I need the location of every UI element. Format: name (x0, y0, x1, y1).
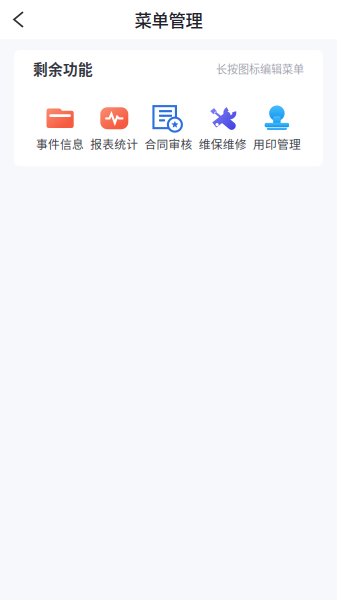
staticText: 长按图标编辑菜单 (216, 61, 304, 77)
staticText: 事件信息 (36, 135, 84, 152)
staticText: 菜单管理 (134, 7, 202, 32)
button[interactable]: 报表统计 (87, 105, 141, 152)
button[interactable]: 用印管理 (250, 105, 304, 152)
button[interactable]: 维保维修 (196, 105, 250, 152)
staticText: 维保维修 (199, 135, 247, 152)
button[interactable]: 合同审核 (141, 105, 196, 152)
staticText: 剩余功能 (33, 58, 93, 79)
staticText: 合同审核 (144, 135, 192, 152)
button[interactable]: 事件信息 (33, 105, 87, 152)
staticText: 报表统计 (90, 135, 138, 152)
staticText: 用印管理 (253, 135, 301, 152)
button[interactable]: Back (0, 1, 41, 38)
